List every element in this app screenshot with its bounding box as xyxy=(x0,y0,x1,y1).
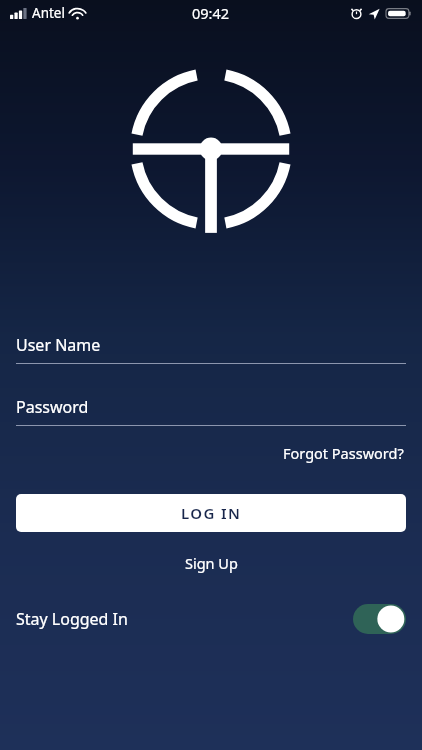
button[interactable]: Sign Up xyxy=(177,550,246,576)
staticText: Antel xyxy=(32,4,65,22)
button[interactable]: Stay Logged In xyxy=(0,598,422,640)
button[interactable]: LOG IN xyxy=(16,494,406,532)
staticText: 09:42 xyxy=(192,3,230,23)
staticText: Stay Logged In xyxy=(16,608,128,630)
button[interactable]: Password xyxy=(0,396,422,426)
button[interactable]: Stay logged in toggle xyxy=(353,604,406,634)
staticText: Forgot Password? xyxy=(283,443,404,463)
staticText: User Name xyxy=(16,334,101,356)
button[interactable]: User Name xyxy=(0,334,422,364)
staticText: LOG IN xyxy=(181,503,242,523)
staticText: Password xyxy=(16,396,89,418)
staticText: Sign Up xyxy=(185,553,238,573)
button[interactable]: Forgot Password? xyxy=(281,440,406,466)
